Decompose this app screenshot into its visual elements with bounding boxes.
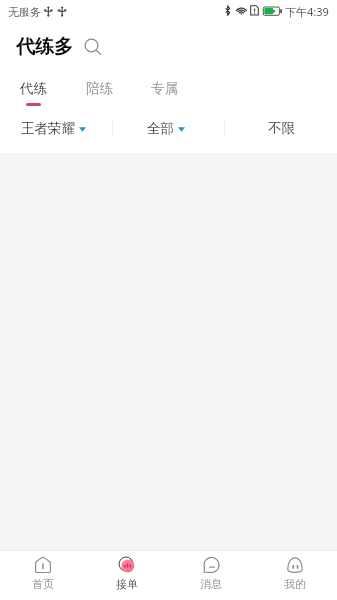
button[interactable]: 陪练 — [76, 72, 123, 112]
button[interactable]: 不限 — [225, 113, 337, 143]
button[interactable]: Search — [81, 31, 105, 55]
staticText: 接单 — [116, 577, 138, 591]
button[interactable]: 消息 — [169, 551, 253, 600]
staticText: 下午4:39 — [285, 4, 329, 19]
staticText: 首页 — [32, 577, 54, 591]
button[interactable]: 全部 — [113, 113, 225, 143]
button[interactable]: 我的 — [253, 551, 337, 600]
button[interactable]: 王者荣耀 — [0, 113, 113, 143]
staticText: 我的 — [284, 577, 306, 591]
staticText: 代练多 — [16, 35, 73, 59]
button[interactable]: 首页 — [0, 551, 85, 600]
staticText: 代练 — [20, 80, 47, 97]
button[interactable]: 专属 — [141, 72, 188, 112]
button[interactable]: 代练 — [10, 72, 57, 112]
button[interactable]: 接单 — [85, 551, 169, 600]
staticText: 陪练 — [86, 80, 113, 97]
staticText: 王者荣耀 — [21, 120, 75, 137]
staticText: 消息 — [200, 577, 222, 591]
staticText: 无服务 — [8, 5, 41, 19]
staticText: 不限 — [268, 120, 295, 137]
staticText: 专属 — [151, 80, 178, 97]
staticText: 全部 — [147, 120, 174, 137]
